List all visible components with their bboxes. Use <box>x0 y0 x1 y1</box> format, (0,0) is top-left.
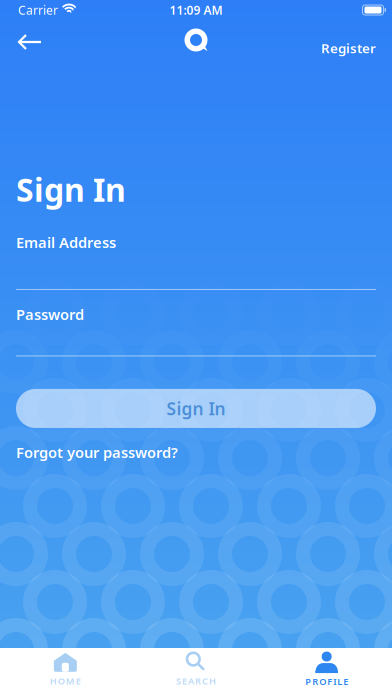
staticText: 11:09 AM <box>169 2 222 18</box>
button[interactable]: HOME <box>0 648 131 696</box>
staticText: Sign In <box>166 397 225 420</box>
staticText: Carrier <box>18 2 58 18</box>
staticText: Password <box>16 304 84 324</box>
button[interactable]: SEARCH <box>131 648 261 696</box>
staticText: HOME <box>50 675 81 687</box>
button[interactable]: Sign In <box>16 389 376 428</box>
staticText: Email Address <box>16 232 116 252</box>
staticText: Sign In <box>16 168 126 210</box>
button[interactable]: Back <box>0 24 41 64</box>
staticText: Register <box>321 39 376 57</box>
button[interactable]: Forgot your password? <box>16 442 178 462</box>
button[interactable]: PROFILE <box>261 648 392 696</box>
staticText: SEARCH <box>176 675 216 687</box>
staticText: Forgot your password? <box>16 442 178 462</box>
staticText: PROFILE <box>305 675 348 688</box>
button[interactable]: Register <box>321 23 392 65</box>
